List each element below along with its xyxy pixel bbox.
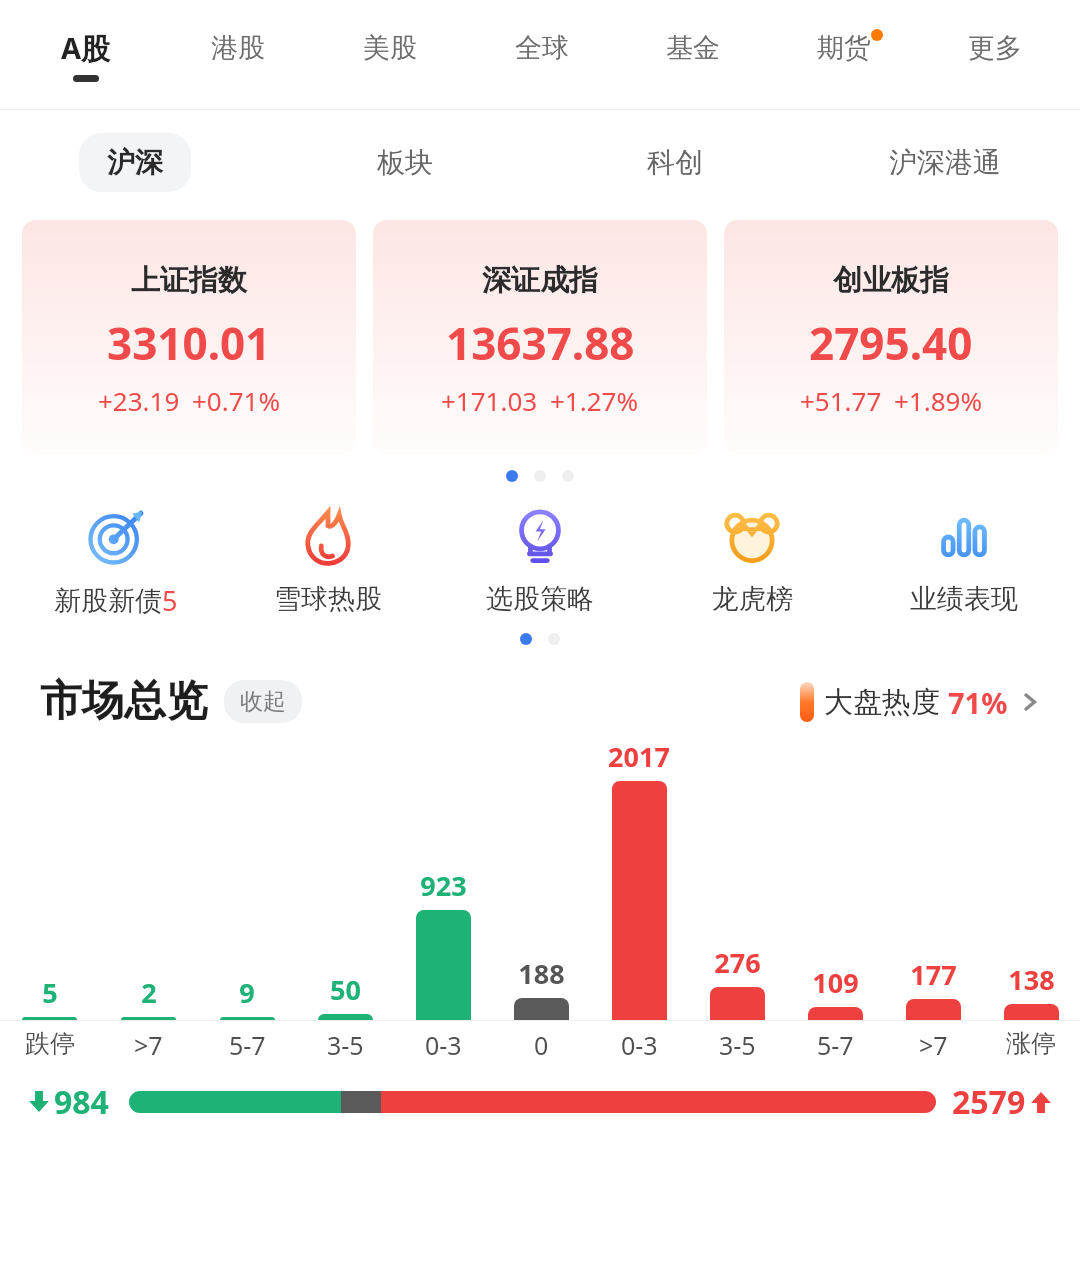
- staticText: 板块: [377, 145, 433, 180]
- button[interactable]: 龙虎榜: [646, 506, 858, 616]
- staticText: 0-3: [425, 1028, 462, 1062]
- staticText: 3-5: [719, 1028, 756, 1062]
- staticText: 5: [162, 582, 178, 619]
- staticText: +171.03: [441, 383, 538, 418]
- staticText: 全球: [515, 31, 569, 65]
- button[interactable]: 板块: [349, 133, 461, 192]
- button[interactable]: 9: [198, 738, 296, 1020]
- button[interactable]: 109: [786, 738, 884, 1020]
- staticText: +23.19: [98, 383, 180, 418]
- staticText: >7: [919, 1028, 948, 1062]
- staticText: 276: [714, 944, 761, 981]
- button[interactable]: 大盘热度: [800, 682, 1040, 722]
- staticText: 收起: [240, 687, 286, 716]
- staticText: 13637.88: [446, 313, 635, 373]
- button[interactable]: 美股: [314, 0, 466, 110]
- staticText: 期货: [817, 31, 871, 65]
- staticText: 138: [1008, 961, 1055, 998]
- button[interactable]: 新股新债: [10, 506, 222, 619]
- button[interactable]: 沪深港通: [861, 133, 1029, 192]
- staticText: 2017: [608, 738, 670, 775]
- staticText: 3310.01: [107, 313, 271, 373]
- button[interactable]: 港股: [162, 0, 314, 110]
- staticText: 2: [141, 974, 157, 1011]
- button[interactable]: 科创: [619, 133, 731, 192]
- button[interactable]: 创业板指: [724, 220, 1058, 454]
- staticText: +0.71%: [192, 383, 281, 418]
- staticText: 港股: [211, 31, 265, 65]
- staticText: +1.27%: [550, 383, 639, 418]
- staticText: 大盘热度: [824, 684, 940, 721]
- button[interactable]: 收起: [224, 680, 302, 723]
- staticText: 2795.40: [809, 313, 973, 373]
- button[interactable]: 上证指数: [22, 220, 356, 454]
- staticText: 923: [420, 867, 467, 904]
- staticText: 美股: [363, 31, 417, 65]
- button[interactable]: 923: [394, 738, 492, 1020]
- staticText: 71%: [948, 683, 1008, 722]
- staticText: >7: [134, 1028, 163, 1062]
- staticText: 选股策略: [486, 582, 594, 616]
- button[interactable]: 雪球热股: [222, 506, 434, 616]
- button[interactable]: 选股策略: [434, 506, 646, 616]
- button[interactable]: 更多: [919, 0, 1070, 110]
- button[interactable]: 业绩表现: [858, 506, 1070, 616]
- button[interactable]: 2017: [590, 738, 688, 1020]
- staticText: 深证成指: [482, 262, 598, 299]
- staticText: 5: [42, 974, 58, 1011]
- staticText: 2579: [952, 1080, 1026, 1124]
- staticText: 188: [518, 955, 565, 992]
- button[interactable]: 2: [99, 738, 198, 1020]
- other: 查看大盘热度: [1020, 692, 1040, 712]
- staticText: +1.89%: [894, 383, 983, 418]
- staticText: 0: [534, 1028, 549, 1062]
- staticText: 新股新债: [54, 584, 162, 618]
- staticText: 沪深港通: [889, 145, 1001, 180]
- staticText: 涨停: [1006, 1028, 1056, 1059]
- staticText: A股: [61, 28, 111, 68]
- staticText: 984: [54, 1080, 109, 1124]
- staticText: 9: [239, 974, 255, 1011]
- staticText: 109: [812, 964, 859, 1001]
- staticText: 沪深: [107, 145, 163, 180]
- button[interactable]: 市场总览: [40, 675, 1040, 728]
- staticText: 科创: [647, 145, 703, 180]
- staticText: 177: [910, 956, 957, 993]
- staticText: 更多: [968, 31, 1022, 65]
- button[interactable]: 50: [296, 738, 394, 1020]
- staticText: 市场总览: [40, 675, 208, 728]
- button[interactable]: 全球: [466, 0, 617, 110]
- staticText: 50: [330, 971, 361, 1008]
- staticText: 0-3: [621, 1028, 658, 1062]
- staticText: 基金: [666, 31, 720, 65]
- staticText: 5-7: [229, 1028, 266, 1062]
- button[interactable]: 基金: [617, 0, 768, 110]
- staticText: +51.77: [800, 383, 882, 418]
- button[interactable]: 177: [884, 738, 982, 1020]
- button[interactable]: A股: [10, 0, 162, 110]
- button[interactable]: 276: [688, 738, 786, 1020]
- button[interactable]: 沪深: [79, 133, 191, 192]
- button[interactable]: 期货: [768, 0, 919, 110]
- button[interactable]: 138: [982, 738, 1080, 1020]
- staticText: 业绩表现: [910, 582, 1018, 616]
- button[interactable]: 188: [492, 738, 590, 1020]
- staticText: 创业板指: [833, 262, 949, 299]
- staticText: 跌停: [25, 1028, 75, 1059]
- staticText: 雪球热股: [274, 582, 382, 616]
- button[interactable]: 5: [0, 738, 99, 1020]
- staticText: 3-5: [327, 1028, 364, 1062]
- staticText: 上证指数: [131, 262, 247, 299]
- button[interactable]: 深证成指: [373, 220, 707, 454]
- staticText: 龙虎榜: [712, 582, 793, 616]
- staticText: 5-7: [817, 1028, 854, 1062]
